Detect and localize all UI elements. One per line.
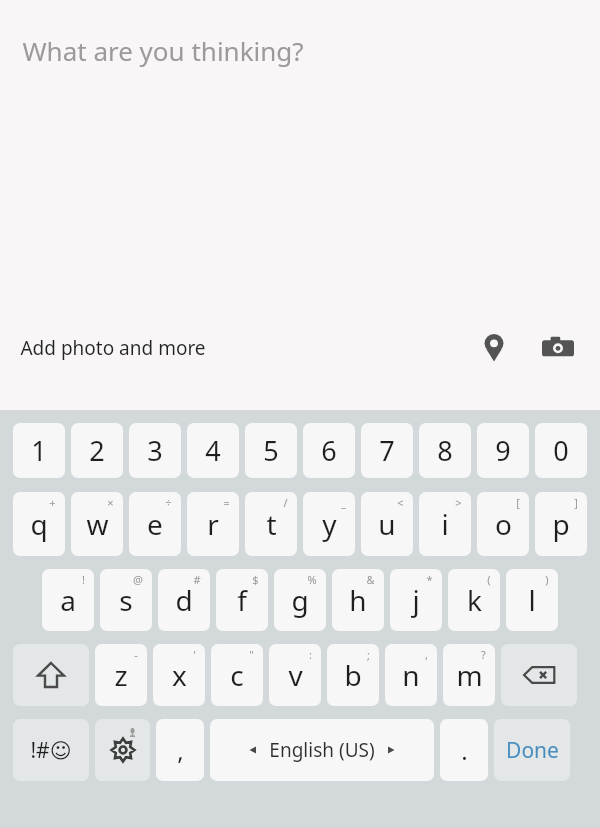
- button[interactable]: Add location: [472, 326, 516, 370]
- button[interactable]: c: [211, 644, 263, 706]
- button[interactable]: 7: [361, 423, 413, 478]
- button[interactable]: 8: [419, 423, 471, 478]
- staticText: 6: [321, 432, 337, 469]
- staticText: k: [467, 581, 482, 619]
- button[interactable]: y: [303, 492, 355, 556]
- staticText: f: [237, 581, 247, 619]
- button[interactable]: s: [100, 569, 152, 631]
- staticText: c: [230, 656, 244, 694]
- button[interactable]: t: [245, 492, 297, 556]
- staticText: 8: [437, 432, 453, 469]
- staticText: ,: [425, 647, 428, 662]
- staticText: %: [307, 572, 317, 587]
- staticText: n: [402, 656, 420, 694]
- staticText: e: [147, 505, 163, 543]
- staticText: <: [397, 495, 404, 510]
- button[interactable]: e: [129, 492, 181, 556]
- button[interactable]: x: [153, 644, 205, 706]
- staticText: 3: [147, 432, 163, 469]
- staticText: ;: [367, 647, 370, 662]
- button[interactable]: English (US): [210, 719, 434, 781]
- button[interactable]: k: [448, 569, 500, 631]
- button[interactable]: h: [332, 569, 384, 631]
- staticText: v: [288, 656, 303, 694]
- button[interactable]: Shift: [13, 644, 89, 706]
- staticText: ?: [481, 647, 486, 662]
- staticText: 0: [553, 432, 569, 469]
- staticText: x: [172, 656, 187, 694]
- button[interactable]: Backspace: [501, 644, 577, 706]
- staticText: w: [86, 505, 109, 543]
- button[interactable]: j: [390, 569, 442, 631]
- staticText: _: [341, 495, 346, 510]
- button[interactable]: !#☺: [13, 719, 89, 781]
- staticText: ,: [177, 734, 184, 767]
- staticText: :: [309, 647, 312, 662]
- button[interactable]: 4: [187, 423, 239, 478]
- button[interactable]: u: [361, 492, 413, 556]
- staticText: ": [249, 647, 254, 662]
- button[interactable]: 3: [129, 423, 181, 478]
- staticText: [: [516, 495, 520, 510]
- staticText: 2: [89, 432, 105, 469]
- staticText: ): [545, 572, 549, 587]
- button[interactable]: n: [385, 644, 437, 706]
- staticText: 4: [205, 432, 221, 469]
- staticText: What are you thinking?: [22, 33, 304, 68]
- button[interactable]: 9: [477, 423, 529, 478]
- button[interactable]: b: [327, 644, 379, 706]
- button[interactable]: 5: [245, 423, 297, 478]
- staticText: a: [60, 581, 76, 619]
- button[interactable]: Done: [494, 719, 570, 781]
- button[interactable]: w: [71, 492, 123, 556]
- staticText: u: [378, 505, 396, 543]
- staticText: @: [133, 572, 143, 587]
- staticText: !#☺: [30, 736, 72, 765]
- staticText: 7: [379, 432, 395, 469]
- staticText: j: [412, 581, 420, 619]
- staticText: p: [552, 505, 570, 543]
- staticText: i: [441, 505, 449, 543]
- button[interactable]: Add photo and more: [20, 335, 206, 361]
- staticText: =: [223, 495, 230, 510]
- button[interactable]: q: [13, 492, 65, 556]
- button[interactable]: ,: [156, 719, 204, 781]
- button[interactable]: r: [187, 492, 239, 556]
- button[interactable]: Take photo: [536, 326, 580, 370]
- button[interactable]: m: [443, 644, 495, 706]
- button[interactable]: 2: [71, 423, 123, 478]
- staticText: 5: [263, 432, 279, 469]
- button[interactable]: f: [216, 569, 268, 631]
- staticText: o: [495, 505, 512, 543]
- staticText: >: [455, 495, 462, 510]
- button[interactable]: l: [506, 569, 558, 631]
- button[interactable]: d: [158, 569, 210, 631]
- staticText: +: [49, 495, 56, 510]
- button[interactable]: i: [419, 492, 471, 556]
- staticText: z: [114, 656, 128, 694]
- button[interactable]: v: [269, 644, 321, 706]
- staticText: (: [487, 572, 491, 587]
- staticText: 1: [31, 432, 47, 469]
- staticText: 9: [495, 432, 511, 469]
- button[interactable]: .: [440, 719, 488, 781]
- staticText: Add photo and more: [20, 335, 206, 361]
- staticText: h: [349, 581, 367, 619]
- button[interactable]: Settings and voice input: [95, 719, 150, 781]
- staticText: ÷: [165, 495, 172, 510]
- staticText: b: [344, 656, 362, 694]
- staticText: ×: [107, 495, 114, 510]
- button[interactable]: 1: [13, 423, 65, 478]
- staticText: Done: [506, 736, 559, 765]
- button[interactable]: o: [477, 492, 529, 556]
- button[interactable]: 6: [303, 423, 355, 478]
- button[interactable]: z: [95, 644, 147, 706]
- staticText: $: [252, 572, 259, 587]
- staticText: q: [30, 505, 48, 543]
- button[interactable]: a: [42, 569, 94, 631]
- button[interactable]: p: [535, 492, 587, 556]
- button[interactable]: g: [274, 569, 326, 631]
- button[interactable]: 0: [535, 423, 587, 478]
- staticText: y: [322, 505, 337, 543]
- staticText: ': [193, 647, 196, 662]
